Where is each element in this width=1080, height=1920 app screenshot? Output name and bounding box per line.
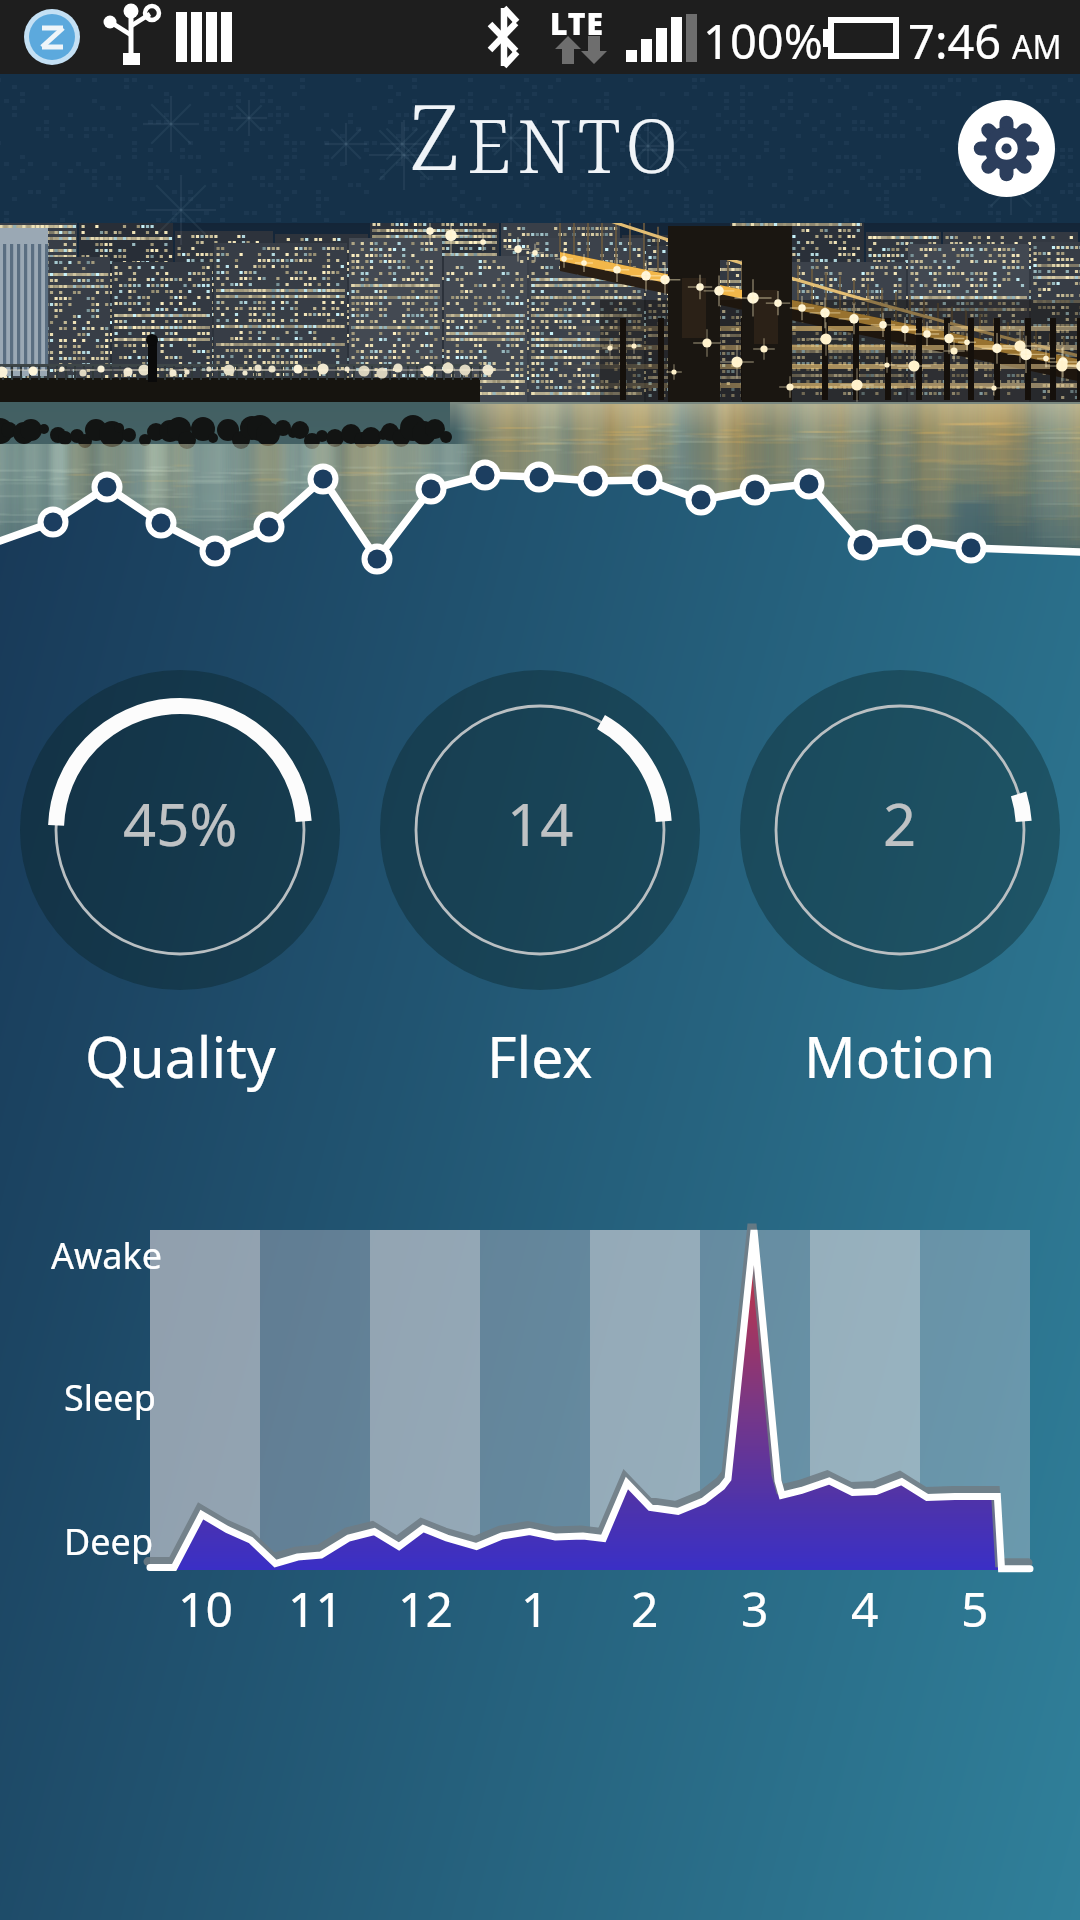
button[interactable]: 14 [360, 670, 720, 1095]
staticText: 3 [741, 1576, 769, 1641]
staticText: Motion [804, 1017, 996, 1095]
staticText: 45% [123, 784, 238, 863]
staticText: AM [1012, 25, 1062, 69]
staticText: 5 [961, 1576, 989, 1641]
staticText: 2 [631, 1576, 659, 1641]
staticText: 7:46 [908, 9, 1002, 73]
staticText: Flex [487, 1017, 593, 1095]
button[interactable]: 2 [720, 670, 1080, 1095]
staticText: 1 [521, 1576, 549, 1641]
staticText: 4 [851, 1576, 879, 1641]
staticText: 2 [883, 784, 917, 863]
staticText: Z [410, 74, 467, 197]
staticText: Deep [64, 1517, 154, 1566]
staticText: Sleep [64, 1373, 156, 1422]
staticText: 100% [703, 9, 823, 73]
staticText: Awake [51, 1231, 163, 1280]
staticText: Quality [85, 1017, 276, 1095]
staticText: 10 [178, 1576, 233, 1641]
staticText: LTE [550, 3, 605, 44]
staticText: 14 [507, 784, 574, 863]
button[interactable]: 45% [0, 670, 360, 1095]
button[interactable]: Settings [958, 100, 1055, 197]
staticText: ENTO [467, 95, 684, 194]
staticText: 12 [398, 1576, 453, 1641]
staticText: 11 [288, 1576, 343, 1641]
